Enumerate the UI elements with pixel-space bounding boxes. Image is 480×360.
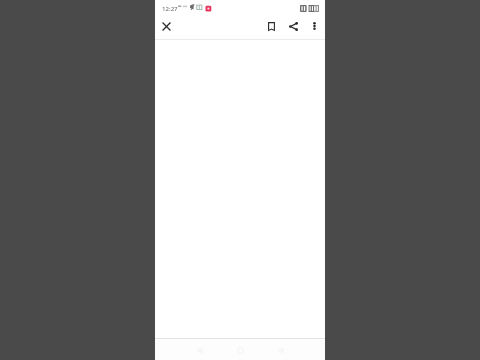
button[interactable]: More options bbox=[305, 17, 323, 35]
staticText: 12:27 bbox=[162, 4, 178, 12]
button[interactable]: Share bbox=[284, 17, 302, 35]
button[interactable]: Close bbox=[157, 17, 175, 35]
button[interactable]: Bookmark bbox=[262, 17, 280, 35]
